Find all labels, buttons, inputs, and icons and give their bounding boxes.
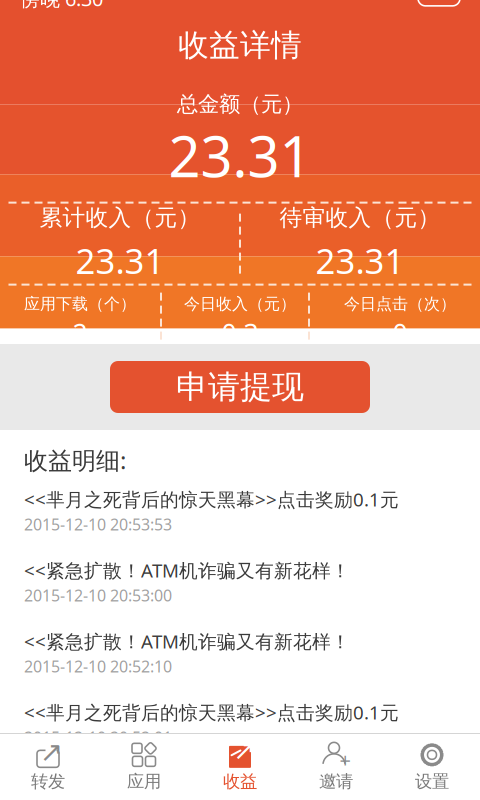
- button[interactable]: <<芈月之死背后的惊天黑幕>>点击奖励0.1元: [0, 487, 480, 546]
- staticText: 2015-12-10 20:53:53: [24, 514, 172, 535]
- staticText: <<芈月之死背后的惊天黑幕>>点击奖励0.1元: [24, 487, 399, 512]
- staticText: 傍晚 6:30: [20, 0, 103, 12]
- staticText: 累计收入（元）: [39, 204, 200, 231]
- staticText: 设置: [415, 771, 449, 792]
- staticText: 转发: [31, 771, 65, 792]
- button[interactable]: ↗: [0, 736, 96, 798]
- staticText: ↗: [233, 736, 255, 766]
- button[interactable]: <<紧急扩散！ATM机诈骗又有新花样！: [0, 558, 480, 617]
- staticText: 2015-12-10 20:52:01: [24, 727, 172, 748]
- button[interactable]: ↗: [192, 736, 288, 798]
- staticText: 23.31: [315, 237, 404, 283]
- staticText: <<紧急扩散！ATM机诈骗又有新花样！: [24, 558, 350, 583]
- staticText: 0.3: [221, 316, 258, 351]
- button[interactable]: 设置: [384, 736, 480, 798]
- button[interactable]: 申请提现: [110, 361, 370, 413]
- staticText: <<紧急扩散！ATM机诈骗又有新花样！: [24, 771, 350, 796]
- staticText: 收益详情: [178, 26, 302, 64]
- staticText: 2: [72, 316, 87, 351]
- staticText: 23.31: [75, 237, 164, 283]
- staticText: 收益明细:: [24, 444, 126, 476]
- staticText: 2015-12-10 20:52:10: [24, 656, 172, 677]
- button[interactable]: +: [288, 736, 384, 798]
- staticText: +: [339, 747, 350, 773]
- staticText: 23.31: [168, 118, 311, 193]
- staticText: 今日收入（元）: [184, 294, 296, 314]
- staticText: ↗: [39, 736, 62, 768]
- button[interactable]: <<紧急扩散！ATM机诈骗又有新花样！: [0, 771, 480, 800]
- staticText: 0: [392, 316, 407, 351]
- button[interactable]: <<芈月之死背后的惊天黑幕>>点击奖励0.1元: [0, 700, 480, 759]
- staticText: 申请提现: [176, 367, 304, 407]
- staticText: 今日点击（次）: [344, 294, 456, 314]
- staticText: 2015-12-10 20:53:00: [24, 585, 172, 606]
- staticText: 邀请: [319, 771, 353, 792]
- staticText: <<芈月之死背后的惊天黑幕>>点击奖励0.1元: [24, 700, 399, 725]
- staticText: 待审收入（元）: [279, 204, 440, 231]
- staticText: 应用下载（个）: [24, 294, 136, 314]
- staticText: 总金额（元）: [177, 91, 303, 117]
- staticText: 收益: [223, 771, 257, 792]
- button[interactable]: <<紧急扩散！ATM机诈骗又有新花样！: [0, 629, 480, 688]
- staticText: 应用: [127, 771, 161, 792]
- button[interactable]: 应用: [96, 736, 192, 798]
- staticText: <<紧急扩散！ATM机诈骗又有新花样！: [24, 629, 350, 654]
